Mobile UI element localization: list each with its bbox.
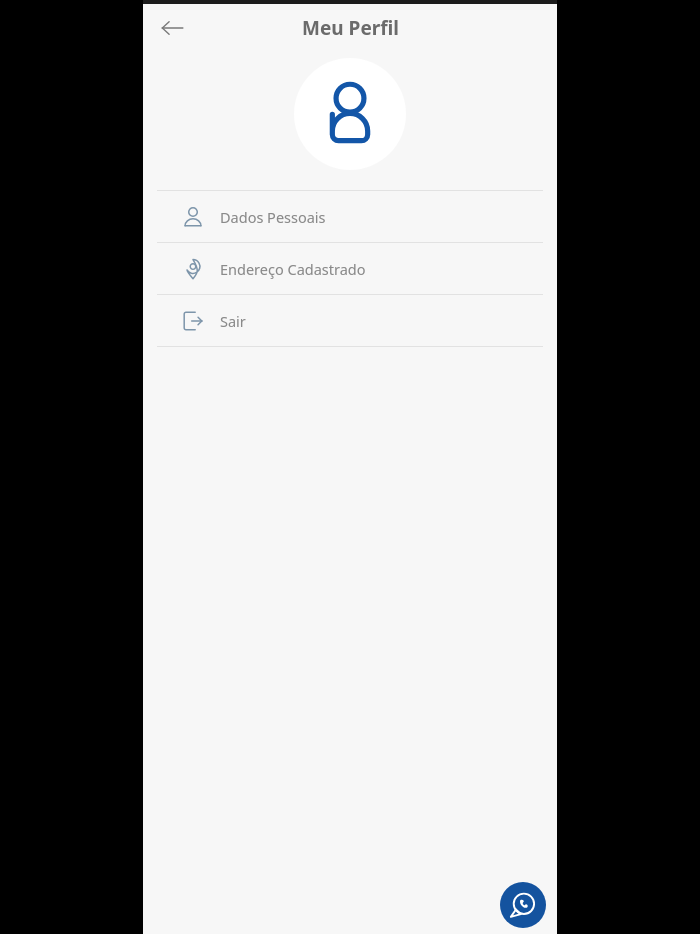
staticText: Endereço Cadastrado: [220, 259, 366, 279]
button[interactable]: Sair: [143, 295, 557, 346]
button[interactable]: Back: [151, 6, 195, 50]
button[interactable]: Dados Pessoais: [143, 191, 557, 242]
staticText: Meu Perfil: [302, 15, 399, 41]
staticText: Sair: [220, 311, 246, 331]
button[interactable]: WhatsApp: [500, 882, 546, 928]
staticText: Dados Pessoais: [220, 207, 326, 227]
button[interactable]: Profile photo: [294, 58, 406, 170]
button[interactable]: Endereço Cadastrado: [143, 243, 557, 294]
